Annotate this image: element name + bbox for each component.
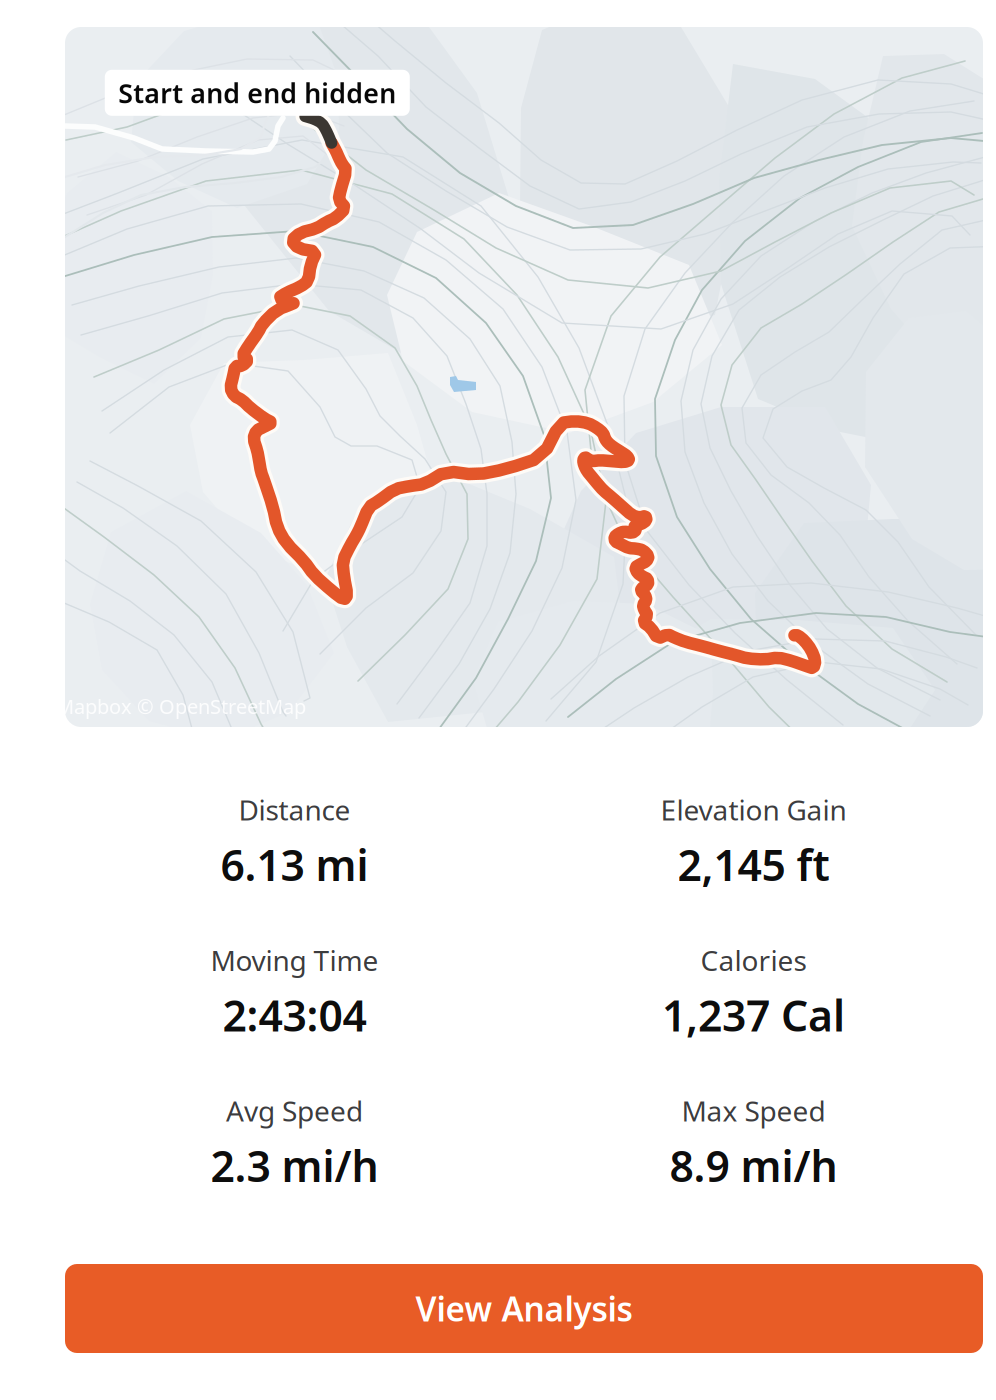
staticText: Elevation Gain xyxy=(660,791,846,828)
staticText: Moving Time xyxy=(210,941,378,979)
staticText: Mapbox © OpenStreetMap xyxy=(56,693,306,720)
staticText: 2,145 ft xyxy=(677,836,829,893)
staticText: 8.9 mi/h xyxy=(669,1137,837,1194)
staticText: Max Speed xyxy=(681,1092,825,1129)
staticText: Calories xyxy=(700,941,806,979)
staticText: 2.3 mi/h xyxy=(210,1137,378,1194)
staticText: Start and end hidden xyxy=(118,75,396,110)
staticText: Avg Speed xyxy=(226,1092,363,1129)
staticText: 6.13 mi xyxy=(220,836,368,893)
button[interactable]: View Analysis xyxy=(65,1264,983,1353)
staticText: 2:43:04 xyxy=(222,987,366,1043)
staticText: 1,237 Cal xyxy=(662,987,845,1043)
staticText: Distance xyxy=(238,791,350,828)
staticText: View Analysis xyxy=(415,1286,632,1331)
